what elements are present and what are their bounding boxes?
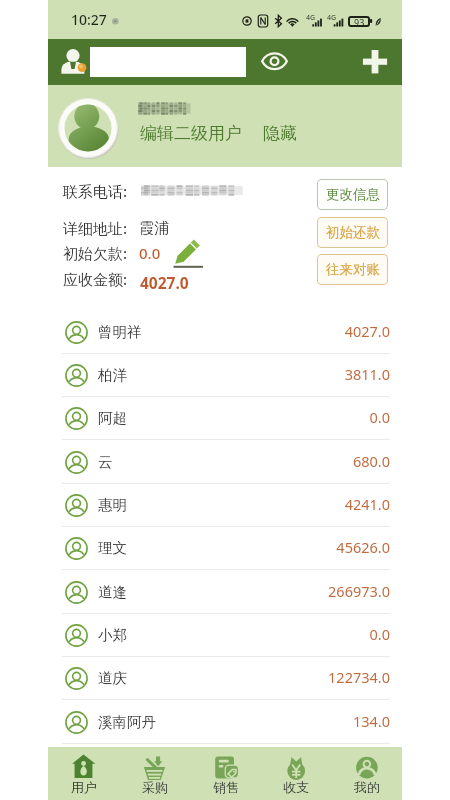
staticText: 4027.0 bbox=[140, 272, 189, 293]
staticText: 柏洋 bbox=[98, 366, 127, 384]
staticText: 45626.0 bbox=[250, 537, 390, 557]
staticText: 应收金额: bbox=[63, 269, 128, 289]
staticText: 采购 bbox=[142, 779, 168, 795]
staticText: 134.0 bbox=[250, 711, 390, 731]
staticText: 用户 bbox=[71, 779, 97, 795]
staticText: 阿超 bbox=[98, 409, 127, 427]
button[interactable]: 小郑 bbox=[48, 614, 402, 657]
button[interactable]: 云 bbox=[48, 441, 402, 484]
staticText: 4241.0 bbox=[250, 494, 390, 514]
button[interactable]: 隐藏 bbox=[263, 123, 297, 144]
staticText: 道逢 bbox=[98, 583, 127, 601]
staticText: 销售 bbox=[213, 779, 239, 795]
staticText: 266973.0 bbox=[250, 581, 390, 601]
button[interactable]: 收支 bbox=[260, 747, 331, 800]
button[interactable]: 更改信息 bbox=[317, 179, 388, 210]
staticText: 初始还款 bbox=[326, 224, 380, 241]
button[interactable]: Toggle visibility bbox=[259, 47, 290, 76]
staticText: 4G bbox=[306, 13, 316, 23]
staticText: 0.0 bbox=[139, 243, 161, 263]
staticText: 93 bbox=[354, 16, 365, 27]
button[interactable]: 阿超 bbox=[48, 397, 402, 440]
staticText: 4027.0 bbox=[250, 321, 390, 341]
button[interactable]: 理文 bbox=[48, 527, 402, 570]
staticText: 详细地址: bbox=[63, 218, 128, 238]
staticText: 惠明 bbox=[98, 496, 127, 514]
staticText: 曾明祥 bbox=[98, 323, 142, 341]
button[interactable]: 曾明祥 bbox=[48, 311, 402, 354]
staticText: 云 bbox=[98, 453, 113, 471]
staticText: 更改信息 bbox=[326, 186, 380, 203]
staticText: 道庆 bbox=[98, 669, 127, 687]
button[interactable]: Select customer bbox=[60, 44, 90, 80]
staticText: 我的 bbox=[354, 779, 380, 795]
staticText: 122734.0 bbox=[250, 667, 390, 687]
button[interactable]: 道庆 bbox=[48, 657, 402, 700]
staticText: 联系电话: bbox=[63, 181, 128, 201]
button[interactable]: 采购 bbox=[119, 747, 190, 800]
button[interactable]: 往来对账 bbox=[317, 254, 388, 285]
staticText: 初始欠款: bbox=[63, 243, 128, 263]
staticText: 溪南阿丹 bbox=[98, 713, 156, 731]
button[interactable]: Add bbox=[361, 49, 389, 75]
staticText: 小郑 bbox=[98, 626, 127, 644]
button[interactable]: 我的 bbox=[331, 747, 402, 800]
button[interactable]: 初始还款 bbox=[317, 217, 388, 248]
button[interactable]: 柏洋 bbox=[48, 354, 402, 397]
staticText: 4G bbox=[327, 13, 337, 23]
staticText: 3811.0 bbox=[250, 364, 390, 384]
button[interactable]: 编辑二级用户 bbox=[140, 123, 242, 144]
staticText: 10:27 bbox=[71, 10, 107, 29]
button[interactable]: 销售 bbox=[190, 747, 261, 800]
staticText: 霞浦 bbox=[139, 219, 169, 238]
staticText: 理文 bbox=[98, 539, 127, 557]
staticText: 0.0 bbox=[250, 624, 390, 644]
staticText: 收支 bbox=[283, 779, 309, 795]
button[interactable]: 溪南阿丹 bbox=[48, 701, 402, 744]
staticText: 往来对账 bbox=[326, 261, 380, 278]
button[interactable]: Edit bbox=[173, 239, 204, 269]
button[interactable]: 用户 bbox=[48, 747, 119, 800]
button[interactable]: 道逢 bbox=[48, 571, 402, 614]
button[interactable]: 惠明 bbox=[48, 484, 402, 527]
staticText: 680.0 bbox=[250, 451, 390, 471]
staticText: 0.0 bbox=[250, 407, 390, 427]
